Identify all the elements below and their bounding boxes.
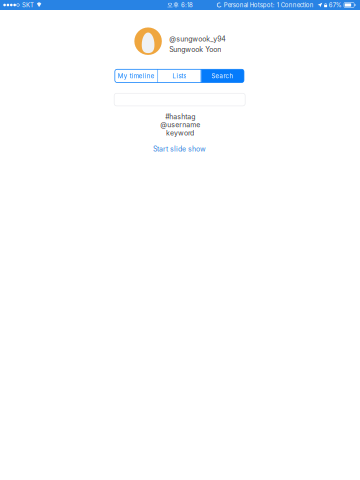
staticText: Search: [212, 72, 234, 80]
staticText: Lists: [172, 72, 186, 80]
staticText: 67%: [329, 1, 342, 9]
button[interactable]: Lists: [158, 69, 201, 82]
staticText: SKT: [22, 1, 34, 9]
button[interactable]: Search field: [114, 93, 245, 106]
staticText: Sungwook Yoon: [169, 45, 221, 54]
staticText: @sungwook_y94: [169, 35, 225, 43]
staticText: Personal Hotspot: 1 Connection: [224, 1, 314, 9]
button[interactable]: Search: [201, 69, 244, 82]
staticText: Start slide show: [153, 145, 206, 153]
button[interactable]: Start slide show: [153, 145, 206, 153]
staticText: #hashtag: [165, 112, 195, 121]
staticText: 오후 6:18: [167, 1, 193, 9]
staticText: @username: [160, 121, 200, 129]
staticText: keyword: [166, 129, 194, 137]
button[interactable]: My timeline: [115, 69, 157, 82]
staticText: My timeline: [118, 72, 155, 80]
